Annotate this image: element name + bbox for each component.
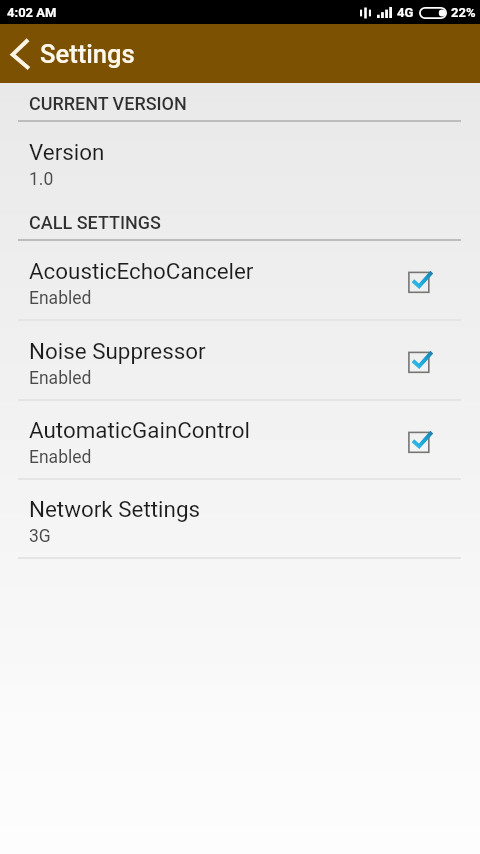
button[interactable]: Back [0, 24, 40, 83]
staticText: 1.0 [29, 169, 54, 190]
staticText: Version [29, 139, 105, 165]
button[interactable]: Noise Suppressor [0, 321, 480, 401]
staticText: 4:02 AM [7, 5, 57, 20]
button[interactable]: AcousticEchoCanceler [0, 241, 480, 321]
staticText: CALL SETTINGS [29, 212, 161, 233]
staticText: AutomaticGainControl [29, 417, 250, 443]
staticText: Enabled [29, 368, 92, 389]
staticText: AcousticEchoCanceler [29, 258, 254, 284]
button[interactable]: AutomaticGainControl [0, 401, 480, 480]
button[interactable]: Version [0, 122, 480, 202]
staticText: 3G [29, 526, 51, 547]
staticText: Enabled [29, 447, 92, 468]
staticText: 22% [451, 5, 476, 20]
staticText: Enabled [29, 288, 92, 309]
staticText: CURRENT VERSION [29, 93, 187, 114]
button[interactable]: Network Settings [0, 480, 480, 559]
staticText: Network Settings [29, 496, 201, 522]
staticText: 4G [397, 5, 414, 20]
staticText: Noise Suppressor [29, 338, 206, 364]
staticText: Settings [40, 39, 135, 69]
